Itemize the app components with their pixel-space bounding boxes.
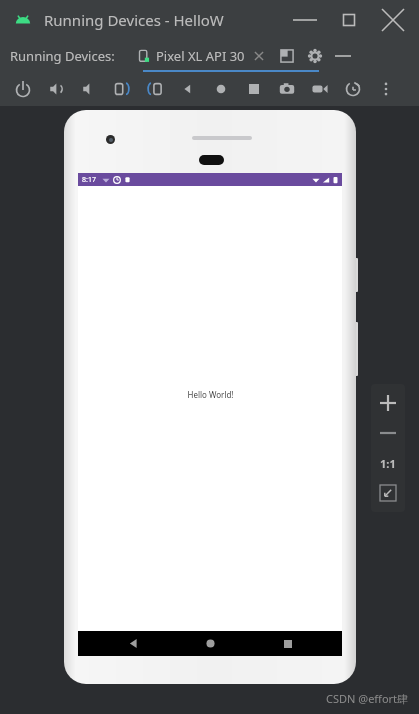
- button[interactable]: Zoom in: [373, 388, 403, 418]
- button[interactable]: Volume up: [39, 74, 72, 104]
- button[interactable]: Close: [371, 3, 415, 37]
- button[interactable]: History: [336, 74, 369, 104]
- button[interactable]: Zoom out: [373, 418, 403, 448]
- button[interactable]: Zoom to actual size: [373, 448, 403, 478]
- button[interactable]: More: [369, 74, 402, 104]
- button[interactable]: Home: [204, 74, 237, 104]
- button[interactable]: Volume down: [72, 74, 105, 104]
- staticText: Hello World!: [187, 389, 234, 400]
- button[interactable]: Minimize: [283, 3, 327, 37]
- button[interactable]: Rotate left: [105, 74, 138, 104]
- button[interactable]: Settings: [301, 42, 329, 70]
- staticText: Running Devices:: [10, 47, 115, 65]
- button[interactable]: Zoom to fit: [373, 478, 403, 508]
- button[interactable]: Back: [110, 631, 156, 656]
- button[interactable]: Overview: [237, 74, 270, 104]
- button[interactable]: Pixel XL API 30: [137, 40, 267, 72]
- staticText: Pixel XL API 30: [156, 47, 245, 65]
- button[interactable]: Rotate right: [138, 74, 171, 104]
- button[interactable]: Maximize: [327, 3, 371, 37]
- button[interactable]: Home: [187, 631, 233, 656]
- staticText: 8:17: [82, 175, 96, 185]
- button[interactable]: Snapshot: [273, 42, 301, 70]
- button[interactable]: Overview: [265, 631, 311, 656]
- button[interactable]: Close tab: [251, 48, 267, 64]
- staticText: CSDN @effort肆: [326, 691, 409, 706]
- button[interactable]: Record: [303, 74, 336, 104]
- button[interactable]: Back: [171, 74, 204, 104]
- button[interactable]: Hide: [329, 42, 357, 70]
- button[interactable]: Screenshot: [270, 74, 303, 104]
- button[interactable]: Power: [6, 74, 39, 104]
- staticText: 1:1: [380, 456, 396, 471]
- staticText: Running Devices - HelloW: [44, 10, 224, 30]
